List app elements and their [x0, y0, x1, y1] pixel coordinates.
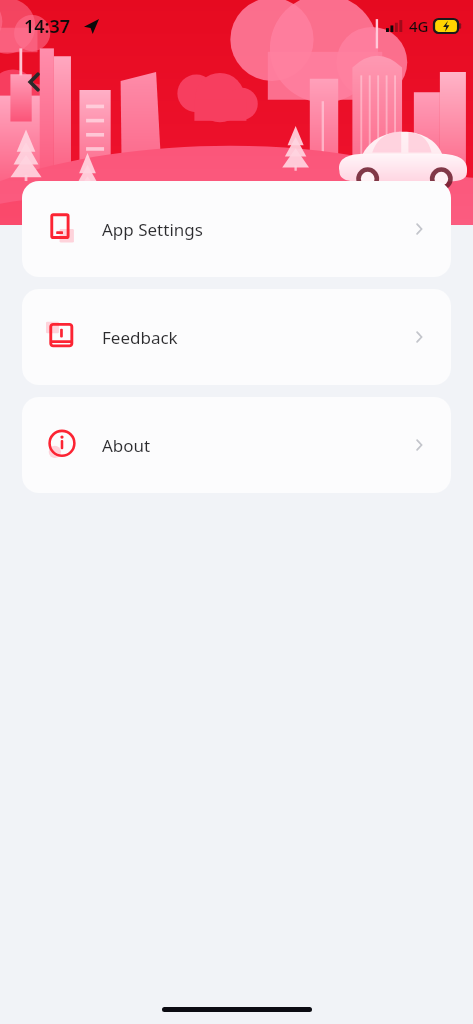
staticText: App Settings — [102, 218, 203, 241]
staticText: About — [102, 434, 151, 457]
staticText: Feedback — [102, 326, 178, 349]
button[interactable]: Back — [14, 62, 54, 102]
button[interactable]: About — [22, 397, 451, 493]
button[interactable]: Feedback — [22, 289, 451, 385]
staticText: 4G — [409, 16, 429, 36]
staticText: 14:37 — [24, 14, 71, 39]
button[interactable]: App Settings — [22, 181, 451, 277]
